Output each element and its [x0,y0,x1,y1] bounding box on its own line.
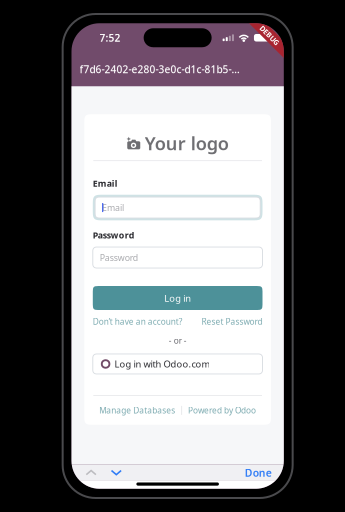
button[interactable]: Powered by Odoo [188,405,256,416]
staticText: Password [93,229,135,241]
staticText: Reset Password [201,316,262,327]
staticText: f7d6-2402-e280-3e0c-d1c-81b5-… [79,62,239,76]
staticText: DEBUG [257,30,281,40]
staticText: Manage Databases [99,405,175,416]
staticText: Email [93,178,118,189]
staticText: Log in with Odoo.com [114,358,210,370]
staticText: - or - [169,335,187,346]
button[interactable]: Done [240,463,277,482]
button[interactable]: Don’t have an account? [93,316,183,327]
button[interactable]: Log in [93,286,262,310]
staticText: Powered by Odoo [188,405,256,416]
staticText: 7:52 [99,31,120,44]
staticText: Don’t have an account? [93,316,183,327]
button[interactable]: Reset Password [201,316,262,327]
staticText: Email [102,202,124,213]
button[interactable]: Previous field [78,467,104,479]
staticText: Log in [164,292,191,304]
button[interactable]: Manage Databases [99,405,175,416]
button[interactable]: f7d6-2402-e280-3e0c-d1c-81b5-… [71,52,284,86]
button[interactable]: Next field [104,467,129,479]
staticText: Password [100,252,138,263]
staticText: Done [245,466,272,479]
button[interactable]: Log in with Odoo.com [93,354,262,374]
staticText: Your logo [145,131,229,155]
